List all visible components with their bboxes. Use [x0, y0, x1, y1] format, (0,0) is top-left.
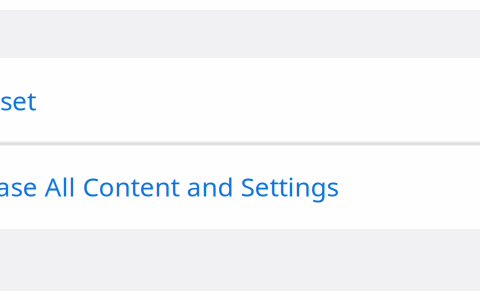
staticText: Erase All Content and Settings [0, 169, 338, 204]
staticText: Reset [0, 83, 36, 118]
button[interactable]: Erase All Content and Settings [0, 146, 480, 229]
button[interactable]: Reset [0, 58, 480, 141]
